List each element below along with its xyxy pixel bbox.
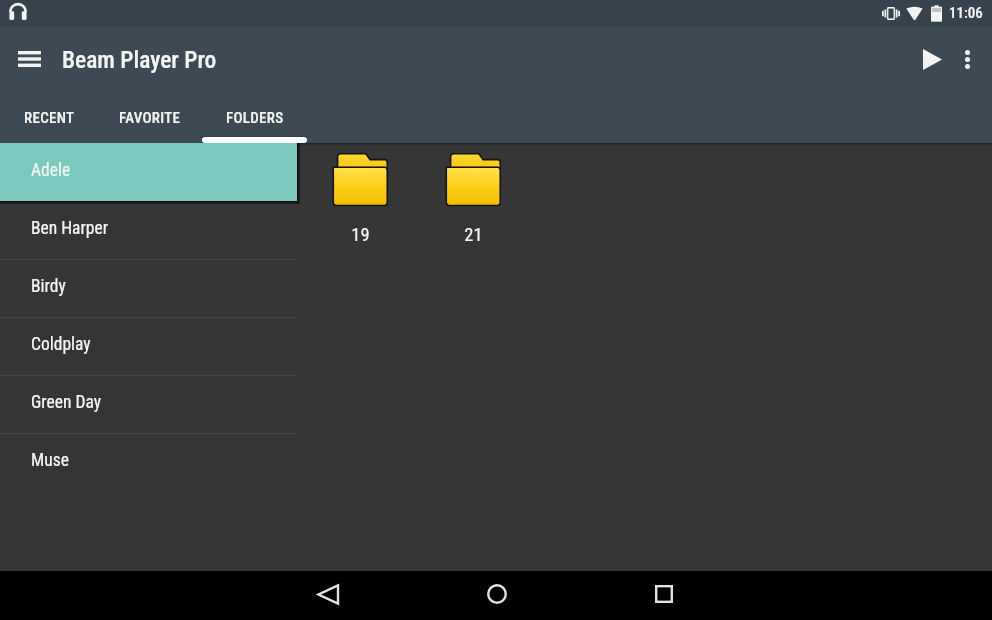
staticText: Adele (31, 160, 71, 181)
button[interactable]: Ben Harper (0, 201, 297, 259)
staticText: FAVORITE (119, 109, 181, 127)
button[interactable]: Home (473, 570, 521, 618)
staticText: Ben Harper (31, 218, 108, 239)
staticText: Birdy (31, 276, 66, 297)
button[interactable]: FAVORITE (98, 96, 202, 143)
staticText: Beam Player Pro (62, 46, 217, 74)
button[interactable]: Adele (0, 143, 297, 201)
staticText: RECENT (24, 109, 75, 127)
button[interactable]: Back (303, 570, 351, 618)
staticText: 21 (464, 224, 483, 246)
staticText: Coldplay (31, 334, 91, 355)
button[interactable]: Birdy (0, 259, 297, 317)
button[interactable]: RECENT (0, 96, 98, 143)
button[interactable]: Recent apps (640, 570, 688, 618)
button[interactable]: 19 (333, 153, 387, 246)
staticText: Muse (31, 450, 69, 471)
button[interactable]: More options (947, 39, 987, 79)
button[interactable]: Muse (0, 433, 297, 491)
button[interactable]: 21 (446, 153, 500, 246)
staticText: Green Day (31, 392, 101, 413)
staticText: 19 (351, 224, 370, 246)
staticText: 11:06 (949, 4, 983, 22)
button[interactable]: FOLDERS (202, 96, 307, 143)
button[interactable]: Green Day (0, 375, 297, 433)
button[interactable]: Open navigation drawer (7, 37, 51, 81)
staticText: FOLDERS (226, 109, 284, 127)
button[interactable]: Play (909, 36, 955, 82)
button[interactable]: Coldplay (0, 317, 297, 375)
